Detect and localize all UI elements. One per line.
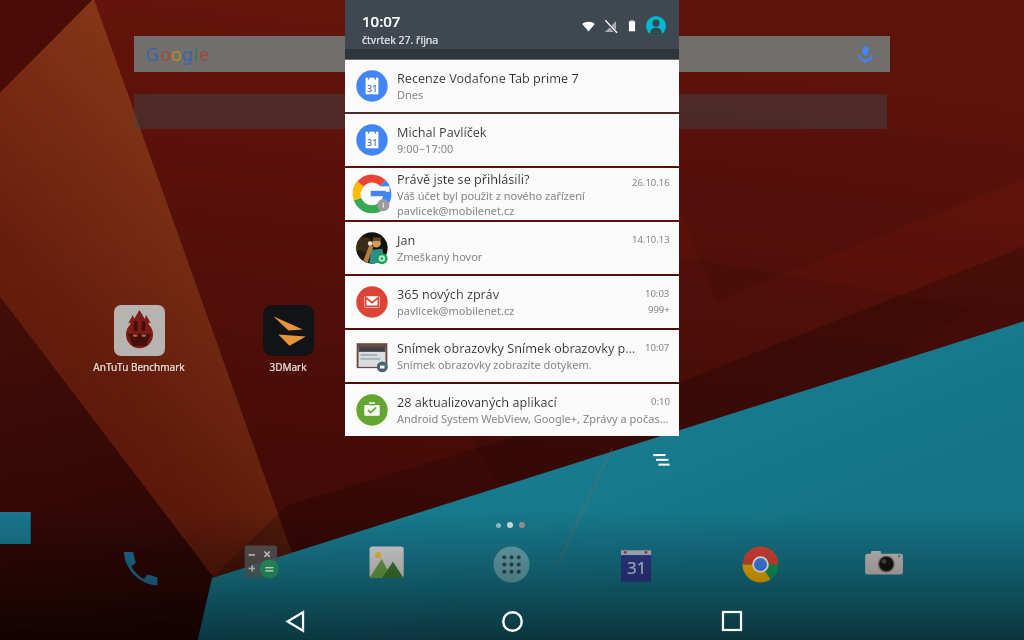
button[interactable]: User profile [646,16,666,36]
button[interactable]: 31 [345,114,679,166]
button[interactable]: Photos [365,542,410,587]
staticText: AnTuTu Benchmark [93,360,185,374]
button[interactable]: Camera [862,542,907,587]
staticText: 10:07 [362,11,401,31]
staticText: Snímek obrazovky Snímek obrazovky poří.. [397,340,639,357]
staticText: o [171,42,182,67]
button[interactable]: All apps [489,542,534,587]
staticText: 26.10.16 [632,176,670,189]
other: Voice search [856,45,875,64]
staticText: 10:07 [645,341,670,354]
button[interactable]: Calendar [614,542,659,587]
staticText: G [146,42,160,67]
button[interactable]: 3DMark [246,305,330,374]
button[interactable]: Back [272,598,318,640]
staticText: 365 nových zpráv [397,286,500,303]
staticText: pavlicek@mobilenet.cz [397,203,515,218]
staticText: 999+ [648,303,670,316]
button[interactable]: 31 [345,60,679,112]
staticText: Snímek obrazovky zobrazíte dotykem. [397,357,592,372]
staticText: 9:00−17:00 [397,141,454,156]
staticText: čtvrtek 27. října [362,33,439,47]
button[interactable]: Jan [345,222,679,274]
staticText: Zmeškaný hovor [397,249,483,264]
staticText: 14.10.13 [632,233,670,246]
staticText: o [160,42,171,67]
button[interactable]: G [134,36,890,72]
button[interactable]: 365 nových zpráv [345,276,679,328]
staticText: Váš účet byl použit z nového zařízení [397,188,585,203]
staticText: e [199,42,210,67]
staticText: pavlicek@mobilenet.cz [397,303,515,318]
staticText: 3DMark [269,360,307,374]
staticText: l [194,42,199,67]
button[interactable]: Recent apps [709,598,755,640]
staticText: Android System WebView, Google+, Zprávy … [397,411,669,426]
button[interactable]: 28 aktualizovaných aplikací [345,384,679,436]
staticText: 0:10 [651,395,670,408]
button[interactable]: Home [489,598,535,640]
button[interactable]: AnTuTu Benchmark [88,305,190,374]
staticText: 31 [627,556,647,579]
staticText: 28 aktualizovaných aplikací [397,394,557,411]
button[interactable]: Chrome [738,542,783,587]
button[interactable]: Calculator [241,542,286,587]
staticText: Dnes [397,87,424,102]
staticText: Jan [397,232,416,249]
staticText: Michal Pavlíček [397,124,487,141]
staticText: 10:03 [645,287,670,300]
button[interactable]: Snímek obrazovky Snímek obrazovky poří.. [345,330,679,382]
button[interactable]: Phone [116,544,161,589]
staticText: 31 [367,136,378,148]
button[interactable]: Právě jste se přihlásili? [345,168,679,220]
staticText: Právě jste se přihlásili? [397,171,530,188]
staticText: g [182,42,194,67]
staticText: 31 [367,82,378,94]
staticText: Recenze Vodafone Tab prime 7 [397,70,579,87]
